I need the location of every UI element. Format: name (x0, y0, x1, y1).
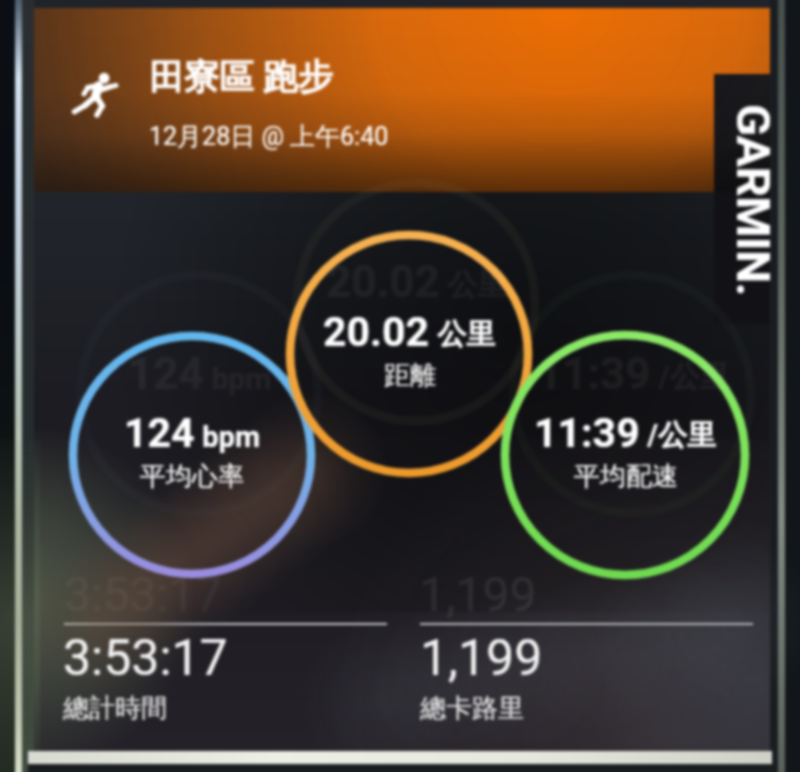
staticText: 20.02 (326, 256, 440, 308)
staticText: 1,199 (420, 629, 543, 688)
button[interactable]: 124 (72, 409, 312, 509)
staticText: 11:39 (537, 348, 651, 400)
staticText: 公里 (430, 316, 496, 353)
button[interactable]: 11:39 (505, 409, 745, 509)
button[interactable]: 田寮區 跑步 (149, 55, 389, 152)
button[interactable]: 20.02 (289, 308, 529, 408)
other: Running activity (72, 70, 118, 116)
staticText: /公里 (651, 358, 730, 396)
staticText: 距離 (384, 359, 436, 392)
staticText: 平均心率 (140, 460, 244, 493)
staticText: bpm (195, 420, 260, 454)
button[interactable]: 3:53:17 (63, 629, 393, 725)
staticText: 124 (124, 409, 195, 457)
staticText: 124 (128, 348, 204, 400)
staticText: /公里 (640, 417, 717, 454)
staticText: 總計時間 (63, 692, 167, 725)
staticText: GARMIN. (731, 104, 781, 296)
staticText: 總卡路里 (420, 692, 524, 725)
staticText: 公里 (440, 266, 508, 304)
button[interactable]: 1,199 (420, 629, 750, 725)
staticText: 平均配速 (574, 460, 678, 493)
other: Garmin (731, 104, 781, 324)
staticText: 11:39 (534, 409, 640, 457)
staticText: 1,199 (419, 566, 537, 622)
staticText: 12月28日 @ 上午6:40 (149, 121, 389, 152)
staticText: 田寮區 跑步 (149, 55, 333, 99)
staticText: 3:53:17 (64, 566, 223, 622)
staticText: 20.02 (323, 308, 430, 356)
staticText: bpm (204, 361, 272, 396)
staticText: 3:53:17 (63, 629, 228, 688)
